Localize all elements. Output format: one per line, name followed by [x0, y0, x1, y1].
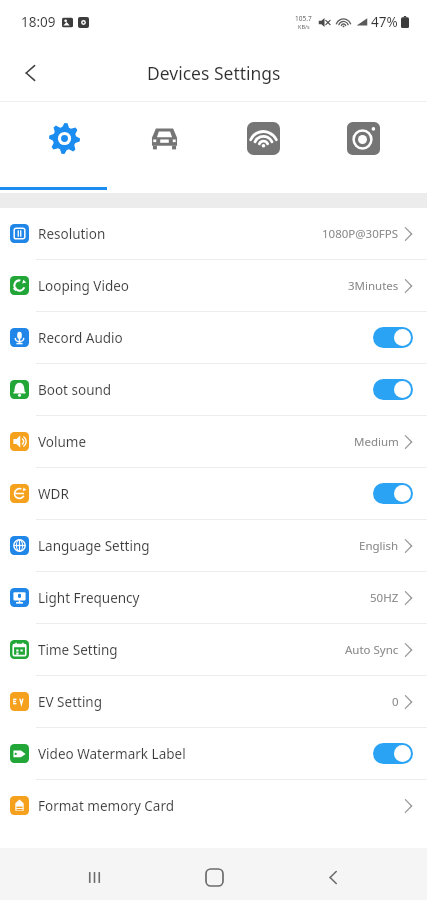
button[interactable]: Boot sound: [0, 364, 427, 415]
staticText: Looping Video: [38, 277, 130, 295]
staticText: 50HZ: [370, 590, 399, 606]
staticText: 18:09: [21, 13, 56, 31]
staticText: Record Audio: [38, 329, 123, 347]
staticText: KB/s: [298, 23, 310, 30]
staticText: English: [359, 538, 399, 554]
staticText: 105.7: [295, 14, 312, 23]
staticText: Light Frequency: [38, 589, 140, 607]
staticText: Time Setting: [38, 641, 118, 659]
button[interactable]: Light Frequency: [0, 572, 427, 623]
button[interactable]: Language Setting: [0, 520, 427, 571]
button[interactable]: Home: [188, 854, 240, 900]
button[interactable]: Volume: [0, 416, 427, 467]
button[interactable]: Camera: [328, 122, 398, 172]
staticText: Language Setting: [38, 537, 150, 555]
button[interactable]: Car: [129, 122, 199, 172]
staticText: Devices Settings: [147, 61, 281, 85]
button[interactable]: Back: [8, 50, 54, 96]
button[interactable]: Looping Video: [0, 260, 427, 311]
button[interactable]: WDR toggle: [373, 483, 413, 504]
staticText: 3Minutes: [348, 278, 399, 294]
staticText: Boot sound: [38, 381, 112, 399]
staticText: Format memory Card: [38, 797, 175, 815]
staticText: 47%: [371, 13, 398, 31]
button[interactable]: Time Setting: [0, 624, 427, 675]
button[interactable]: Resolution: [0, 208, 427, 259]
staticText: EV Setting: [38, 693, 103, 711]
staticText: Volume: [38, 433, 87, 451]
button[interactable]: Back: [307, 854, 359, 900]
button[interactable]: Video Watermark Label toggle: [373, 743, 413, 764]
staticText: Auto Sync: [345, 642, 399, 658]
button[interactable]: Video Watermark Label: [0, 728, 427, 779]
staticText: 0: [392, 694, 399, 710]
staticText: Resolution: [38, 225, 106, 243]
button[interactable]: Settings: [29, 122, 99, 172]
button[interactable]: Record Audio: [0, 312, 427, 363]
staticText: Video Watermark Label: [38, 745, 186, 763]
button[interactable]: Recents: [68, 854, 120, 900]
button[interactable]: Record Audio toggle: [373, 327, 413, 348]
button[interactable]: Boot sound toggle: [373, 379, 413, 400]
staticText: WDR: [38, 485, 69, 503]
button[interactable]: WDR: [0, 468, 427, 519]
button[interactable]: Format memory Card: [0, 780, 427, 831]
staticText: 1080P@30FPS: [322, 226, 399, 242]
button[interactable]: EV Setting: [0, 676, 427, 727]
staticText: Medium: [354, 434, 399, 450]
button[interactable]: WiFi: [228, 122, 298, 172]
